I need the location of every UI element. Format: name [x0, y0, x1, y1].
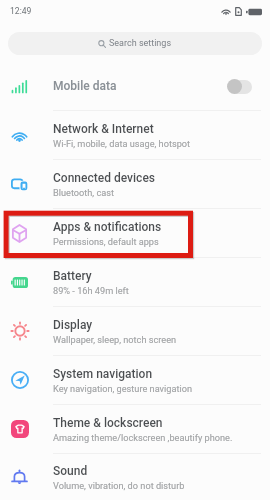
staticText: Wi-Fi, mobile, data usage, hotspot	[53, 138, 191, 149]
staticText: Mobile data	[53, 79, 117, 93]
staticText: Display	[53, 318, 93, 332]
button[interactable]: Battery	[0, 258, 270, 306]
button[interactable]: Mobile data	[0, 62, 270, 110]
staticText: Sound	[53, 464, 88, 478]
button[interactable]: Display	[0, 307, 270, 355]
staticText: Key navigation, gesture navigation	[53, 383, 192, 394]
staticText: Amazing theme/lockscreen ,beautify phone…	[53, 432, 233, 443]
button[interactable]: Search settings	[8, 32, 262, 55]
staticText: 12:49	[10, 6, 32, 16]
staticText: Volume, vibration, do not disturb	[53, 480, 185, 491]
button[interactable]: Network & Internet	[0, 111, 270, 159]
button[interactable]: Apps & notifications	[0, 209, 270, 257]
staticText: 89% - 16h 49m left	[53, 285, 129, 296]
staticText: Bluetooth, cast	[53, 187, 114, 198]
staticText: Permissions, default apps	[53, 236, 159, 247]
button[interactable]: Mobile data toggle	[227, 79, 252, 94]
staticText: Connected devices	[53, 171, 156, 185]
staticText: Theme & lockscreen	[53, 416, 163, 430]
staticText: Network & Internet	[53, 122, 154, 136]
staticText: Wallpaper, sleep, notch screen	[53, 334, 177, 345]
staticText: Battery	[53, 269, 92, 283]
staticText: System navigation	[53, 367, 153, 381]
button[interactable]: Theme & lockscreen	[0, 405, 270, 453]
button[interactable]: Connected devices	[0, 160, 270, 208]
button[interactable]: System navigation	[0, 356, 270, 404]
button[interactable]: Sound	[0, 454, 270, 500]
staticText: Search settings	[109, 38, 172, 49]
staticText: Apps & notifications	[53, 220, 162, 234]
